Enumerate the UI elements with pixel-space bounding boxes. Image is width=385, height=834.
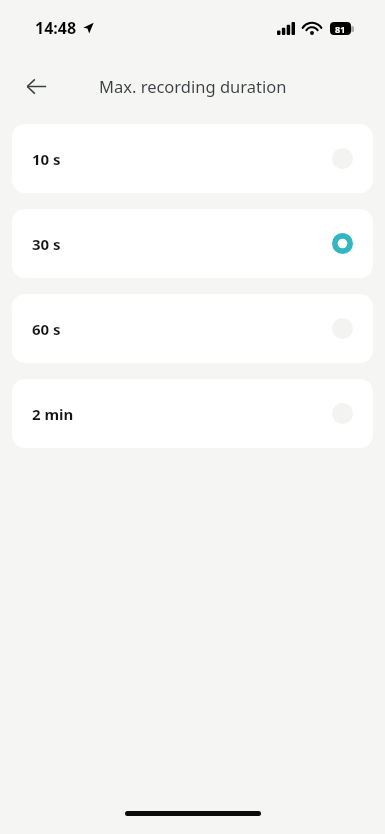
- button[interactable]: 2 min: [12, 379, 373, 448]
- staticText: 60 s: [32, 319, 61, 339]
- staticText: 10 s: [32, 149, 61, 169]
- button[interactable]: Back: [18, 68, 54, 104]
- staticText: 30 s: [32, 234, 61, 254]
- button[interactable]: 10 s: [12, 124, 373, 193]
- button[interactable]: 60 s: [12, 294, 373, 363]
- staticText: 14:48: [35, 17, 77, 39]
- staticText: Max. recording duration: [99, 75, 287, 97]
- button[interactable]: 30 s: [12, 209, 373, 278]
- staticText: 81: [335, 23, 346, 35]
- staticText: 2 min: [32, 404, 74, 424]
